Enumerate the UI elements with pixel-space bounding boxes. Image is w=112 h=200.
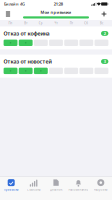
staticText: 3 — [104, 59, 106, 64]
staticText: Напоминания — [68, 188, 88, 191]
button[interactable]: Настройки — [90, 176, 112, 194]
staticText: Билайн — [4, 1, 19, 7]
button[interactable]: Меню — [3, 8, 13, 19]
staticText: Чт — [54, 21, 57, 25]
staticText: Отказ от кофеина — [4, 30, 50, 37]
staticText: 21:28 — [54, 1, 63, 7]
staticText: Сб — [84, 21, 88, 25]
staticText: Статистика — [27, 188, 40, 191]
staticText: Вт — [24, 21, 27, 25]
staticText: Вс — [100, 21, 103, 25]
staticText: Пн — [8, 21, 12, 25]
button[interactable]: Отказ от новостей — [0, 55, 112, 78]
button[interactable]: Напоминания — [67, 176, 90, 194]
staticText: Дневник — [50, 188, 62, 191]
staticText: Отказ от новостей — [4, 58, 52, 65]
button[interactable]: Статистика — [22, 176, 45, 194]
button[interactable]: Привычки — [0, 176, 22, 194]
staticText: Ср — [39, 21, 43, 25]
staticText: Пт — [70, 21, 73, 25]
button[interactable]: Добавить — [99, 8, 109, 19]
button[interactable]: Дневник — [45, 176, 67, 194]
staticText: Мои привычки — [40, 9, 71, 15]
button[interactable]: Отказ от кофеина — [0, 26, 112, 50]
staticText: 2 — [104, 31, 106, 36]
staticText: 4G — [19, 1, 25, 7]
staticText: Настройки — [94, 188, 108, 191]
staticText: Привычки — [4, 188, 19, 191]
